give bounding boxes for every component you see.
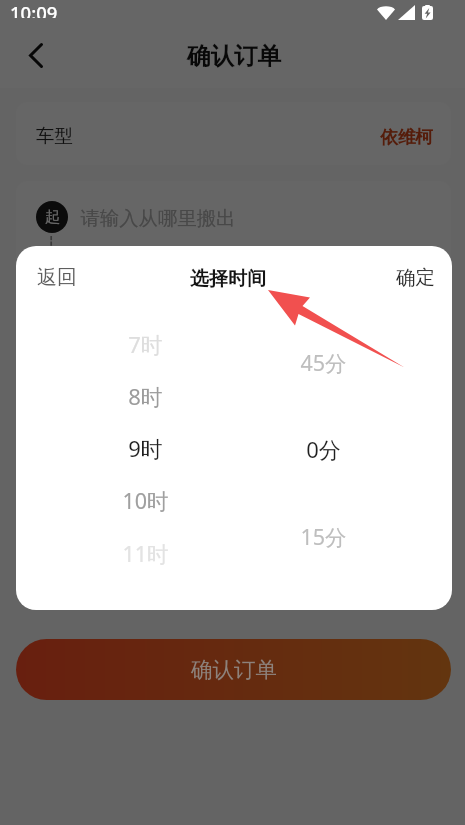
staticText: 7时 (128, 329, 163, 359)
staticText: 10时 (122, 486, 169, 515)
button[interactable] (16, 102, 451, 165)
button[interactable]: 请输入从哪里搬出 (0, 0, 220, 40)
button[interactable]: 确认订单 (16, 639, 451, 700)
staticText: 返回 (37, 265, 77, 290)
staticText: 9时 (128, 433, 163, 463)
staticText: 选择时间 (190, 267, 266, 291)
staticText: 15分 (300, 522, 347, 551)
staticText: 车型 (36, 124, 73, 147)
staticText: 请输入从哪里搬出 (80, 206, 236, 230)
button[interactable]: 返回 (0, 0, 70, 44)
staticText: 确认订单 (187, 41, 281, 71)
button[interactable]: 选择时间 (0, 0, 120, 44)
staticText: 起 (45, 208, 60, 227)
staticText: 确定 (396, 265, 435, 290)
staticText: 确认订单 (191, 656, 277, 683)
staticText: 10:09 (10, 0, 58, 18)
button[interactable]: 确定 (0, 0, 70, 44)
staticText: 45分 (300, 348, 347, 377)
staticText: 依维柯 (380, 126, 433, 148)
button[interactable]: Back (13, 33, 58, 78)
staticText: 8时 (128, 381, 163, 411)
staticText: 11时 (122, 539, 169, 568)
staticText: 0分 (306, 434, 341, 464)
